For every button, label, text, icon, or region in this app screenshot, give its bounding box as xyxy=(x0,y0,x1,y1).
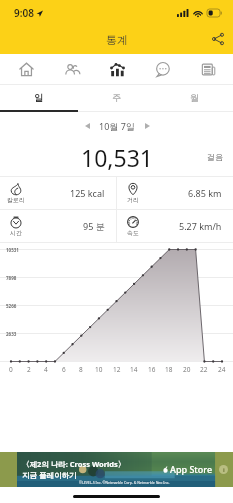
staticText: 10 xyxy=(95,365,103,374)
staticText: 칼로리 xyxy=(7,196,25,204)
staticText: 7898 xyxy=(6,275,17,281)
button[interactable]: 월 xyxy=(155,85,233,112)
staticText: 18 xyxy=(165,365,173,374)
staticText: 속도 xyxy=(127,229,139,237)
staticText: 22 xyxy=(200,365,208,374)
staticText: 10,531 xyxy=(81,142,153,170)
staticText: 5.27 km/h xyxy=(179,220,222,232)
button[interactable]: Next day xyxy=(138,117,156,135)
staticText: 10531 xyxy=(6,247,19,253)
staticText: 20 xyxy=(183,365,191,374)
staticText: 5266 xyxy=(6,303,17,309)
button[interactable]: 거리 xyxy=(117,177,233,209)
staticText: 〈제2의 나라: Cross Worlds〉 xyxy=(22,459,126,469)
staticText: 2633 xyxy=(6,331,17,337)
staticText: i xyxy=(223,466,225,474)
button[interactable]: 칼로리 xyxy=(0,177,116,209)
staticText: 6.85 km xyxy=(188,187,222,199)
button[interactable]: Share xyxy=(207,28,229,50)
staticText: 10월 7일 xyxy=(99,120,135,132)
staticText: 주 xyxy=(112,92,121,103)
staticText: 4 xyxy=(44,365,48,374)
button[interactable]: 〈제2의 나라: Cross Worlds〉 xyxy=(0,452,233,487)
staticText: 14 xyxy=(130,365,138,374)
staticText: ©LEVEL-5 Inc. ©Netmarble Corp. & Netmarb… xyxy=(79,480,170,485)
staticText: 8 xyxy=(79,365,83,374)
button[interactable]: News xyxy=(188,54,228,85)
staticText: 12 xyxy=(113,365,121,374)
button[interactable]: Home xyxy=(6,54,46,85)
staticText: 6 xyxy=(62,365,66,374)
staticText: 일 xyxy=(34,92,43,103)
button[interactable]: Statistics xyxy=(97,54,137,85)
button[interactable]: 시간 xyxy=(0,210,116,242)
staticText: 125 kcal xyxy=(70,187,105,199)
staticText: 9:08 xyxy=(14,6,34,20)
staticText: 0 xyxy=(9,365,13,374)
staticText: 16 xyxy=(148,365,156,374)
other: Ad info xyxy=(219,465,228,474)
button[interactable]: 일 xyxy=(0,85,77,112)
staticText: 24 xyxy=(218,365,226,374)
button[interactable]: Friends xyxy=(51,54,91,85)
staticText: 지금 플레이하기 xyxy=(22,470,77,480)
button[interactable]: Chat xyxy=(142,54,182,85)
staticText: 2 xyxy=(27,365,31,374)
staticText: 월 xyxy=(190,92,199,103)
staticText: 거리 xyxy=(127,196,139,204)
staticText: App Store xyxy=(170,463,213,475)
button[interactable]: 주 xyxy=(77,85,155,112)
button[interactable]: Previous day xyxy=(78,117,96,135)
staticText: 걸음 xyxy=(207,152,223,162)
staticText: 통계 xyxy=(106,33,128,47)
button[interactable]: 속도 xyxy=(117,210,233,242)
staticText: 95 분 xyxy=(83,220,105,232)
staticText: 시간 xyxy=(10,229,22,237)
